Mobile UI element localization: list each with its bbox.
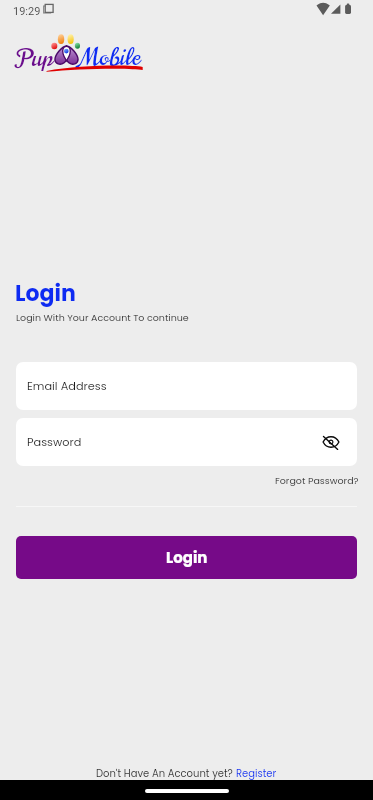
button[interactable]: Forgot Password? (275, 474, 359, 487)
staticText: Don't Have An Account yet? (96, 766, 236, 780)
button[interactable]: Password (16, 418, 357, 466)
staticText: Password (27, 434, 82, 450)
button[interactable]: Email Address (16, 362, 357, 410)
staticText: Login With Your Account To continue (16, 311, 189, 324)
button[interactable]: Login (16, 536, 357, 579)
button[interactable]: Show password (313, 424, 349, 460)
staticText: Login (166, 547, 208, 568)
staticText: Email Address (27, 378, 107, 394)
staticText: Pup (16, 41, 53, 75)
staticText: 19:29 (13, 5, 41, 18)
staticText: Login (15, 278, 76, 309)
staticText: Mobile (80, 41, 141, 73)
button[interactable]: Register (236, 766, 277, 780)
